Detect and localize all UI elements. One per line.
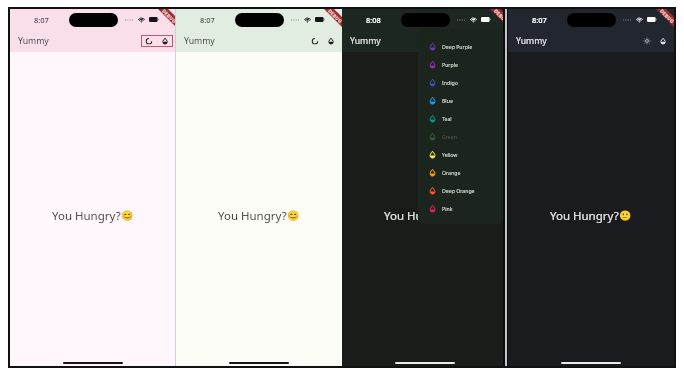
staticText: 8:07	[200, 15, 215, 25]
staticText: DEBUG	[493, 9, 508, 25]
button[interactable]: Indigo	[418, 73, 503, 91]
staticText: Yummy	[516, 35, 547, 47]
staticText: 8:08	[366, 15, 381, 25]
staticText: You Hungry?	[52, 208, 121, 224]
button[interactable]: Light mode	[639, 35, 655, 47]
staticText: Deep Purple	[442, 43, 473, 50]
staticText: Purple	[442, 61, 458, 68]
button[interactable]: Theme colour	[489, 35, 505, 47]
staticText: 🙂	[619, 210, 632, 222]
button[interactable]: Dark mode	[141, 35, 157, 47]
button[interactable]: Deep Orange	[418, 181, 503, 199]
staticText: Yummy	[184, 35, 215, 47]
button[interactable]: Dark mode	[307, 35, 323, 47]
staticText: 😊	[121, 210, 134, 222]
staticText: DEBUG	[659, 9, 674, 25]
staticText: Deep Orange	[442, 187, 475, 194]
button[interactable]: Green	[418, 127, 503, 145]
staticText: 8:07	[34, 15, 49, 25]
staticText: You Hungry?	[218, 208, 287, 224]
button[interactable]: Teal	[418, 109, 503, 127]
button[interactable]: Blue	[418, 91, 503, 109]
button[interactable]: Pink	[418, 199, 503, 217]
staticText: Yummy	[350, 35, 381, 47]
staticText: 8:07	[532, 15, 547, 25]
staticText: Indigo	[442, 79, 458, 86]
button[interactable]: Theme colour	[655, 35, 671, 47]
button[interactable]: Theme colour	[157, 35, 173, 47]
staticText: Blue	[442, 97, 453, 104]
staticText: Yummy	[18, 35, 49, 47]
button[interactable]: Yellow	[418, 145, 503, 163]
staticText: Yellow	[442, 151, 458, 158]
staticText: Teal	[442, 115, 452, 122]
staticText: You Hungry?	[384, 208, 453, 224]
staticText: Orange	[442, 169, 461, 176]
staticText: You Hungry?	[550, 208, 619, 224]
button[interactable]: Theme colour	[323, 35, 339, 47]
staticText: Pink	[442, 205, 453, 212]
staticText: DEBUG	[161, 9, 176, 25]
button[interactable]: Orange	[418, 163, 503, 181]
button[interactable]: Purple	[418, 55, 503, 73]
staticText: Green	[442, 133, 457, 140]
staticText: 😊	[287, 210, 300, 222]
button[interactable]: Deep Purple	[418, 37, 503, 55]
staticText: DEBUG	[327, 9, 342, 25]
